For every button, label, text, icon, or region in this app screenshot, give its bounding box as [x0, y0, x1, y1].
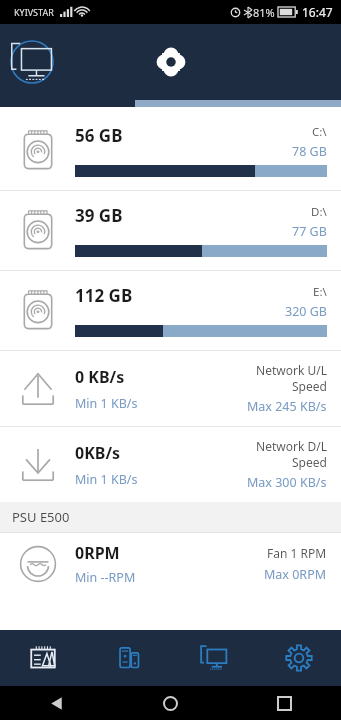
button[interactable]: Computers	[171, 630, 256, 686]
staticText: E:\	[313, 284, 327, 300]
staticText: 0RPM	[75, 542, 120, 564]
staticText: Max 300 KB/s	[247, 474, 327, 491]
staticText: Fan 1 RPM	[267, 545, 327, 561]
staticText: Network U/L	[256, 362, 327, 378]
staticText: Min --RPM	[75, 569, 136, 586]
button[interactable]: Computer	[8, 38, 56, 86]
staticText: 320 GB	[285, 303, 327, 320]
button[interactable]: 56 GB	[0, 111, 341, 190]
staticText: 39 GB	[75, 204, 292, 227]
button[interactable]: 0 KB/s	[0, 351, 341, 426]
staticText: 0 KB/s	[75, 366, 125, 388]
staticText: Network D/L	[256, 438, 327, 454]
staticText: Max 245 KB/s	[247, 398, 327, 415]
staticText: 56 GB	[75, 124, 292, 147]
staticText: 81%	[253, 5, 275, 20]
staticText: Max 0RPM	[264, 566, 327, 583]
staticText: Min 1 KB/s	[75, 395, 138, 412]
staticText: Min 1 KB/s	[75, 471, 138, 488]
staticText: 77 GB	[292, 223, 327, 240]
staticText: D:\	[311, 204, 327, 220]
button[interactable]: 39 GB	[0, 191, 341, 270]
button[interactable]: 0KB/s	[0, 427, 341, 502]
staticText: 0KB/s	[75, 442, 121, 464]
staticText: C:\	[312, 124, 327, 140]
staticText: 78 GB	[292, 143, 327, 160]
button[interactable]: 112 GB	[0, 271, 341, 350]
button[interactable]: Devices	[86, 630, 171, 686]
staticText: 112 GB	[75, 284, 285, 307]
staticText: Speed	[292, 378, 327, 394]
staticText: PSU E500	[12, 508, 70, 526]
button[interactable]: 0RPM	[0, 533, 341, 595]
staticText: Speed	[292, 454, 327, 470]
staticText: KYIVSTAR	[14, 6, 54, 18]
button[interactable]: Settings	[256, 630, 341, 686]
button[interactable]: Reports	[0, 630, 86, 686]
button[interactable]: Status	[148, 39, 194, 85]
staticText: 16:47	[302, 4, 333, 20]
